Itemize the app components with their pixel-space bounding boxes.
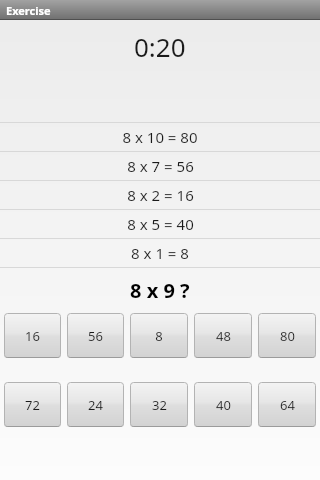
staticText: 0:20 (134, 29, 186, 64)
button[interactable]: 8 x 1 = 8 (0, 239, 320, 267)
button[interactable]: 40 (194, 382, 252, 427)
staticText: 72 (25, 396, 40, 414)
staticText: 40 (216, 396, 231, 414)
button[interactable]: 48 (194, 313, 252, 358)
staticText: 64 (280, 396, 295, 414)
staticText: 24 (88, 396, 103, 414)
staticText: Exercise (6, 3, 51, 18)
staticText: 32 (152, 396, 167, 414)
staticText: 8 x 2 = 16 (127, 185, 194, 205)
staticText: 16 (25, 327, 40, 345)
staticText: 8 x 5 = 40 (127, 214, 194, 234)
staticText: 48 (216, 327, 231, 345)
staticText: 8 x 10 = 80 (122, 127, 198, 147)
staticText: 80 (280, 327, 295, 345)
button[interactable]: 64 (258, 382, 316, 427)
staticText: 8 x 7 = 56 (127, 156, 194, 176)
staticText: 8 x 1 = 8 (131, 243, 189, 263)
staticText: 56 (88, 327, 103, 345)
button[interactable]: 72 (4, 382, 61, 427)
button[interactable]: 56 (67, 313, 124, 358)
button[interactable]: 8 (130, 313, 188, 358)
button[interactable]: 8 x 7 = 56 (0, 152, 320, 180)
button[interactable]: 8 x 10 = 80 (0, 123, 320, 151)
button[interactable]: 8 x 2 = 16 (0, 181, 320, 209)
staticText: 8 (155, 327, 163, 345)
button[interactable]: 8 x 5 = 40 (0, 210, 320, 238)
button[interactable]: 32 (130, 382, 188, 427)
button[interactable]: 24 (67, 382, 124, 427)
staticText: 8 x 9 ? (130, 277, 190, 304)
button[interactable]: 16 (4, 313, 61, 358)
button[interactable]: 80 (258, 313, 316, 358)
